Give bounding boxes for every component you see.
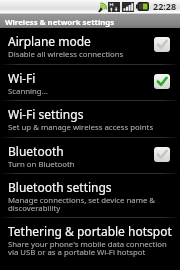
- staticText: Manage connections, set device name &: [8, 195, 156, 206]
- staticText: Wi-Fi: [8, 70, 36, 86]
- staticText: Scanning…: [8, 86, 48, 97]
- button[interactable]: Airplane mode: [0, 28, 180, 64]
- staticText: Tethering & portable hotspot: [8, 223, 172, 239]
- staticText: Turn on Bluetooth: [8, 159, 75, 170]
- button[interactable]: Disabled: [153, 36, 170, 52]
- button[interactable]: Enabled: [153, 73, 170, 89]
- staticText: Disable all wireless connections: [8, 49, 124, 60]
- staticText: Bluetooth settings: [8, 179, 112, 195]
- staticText: Airplane mode: [8, 33, 91, 49]
- button[interactable]: Wi-Fi settings: [0, 101, 180, 137]
- staticText: via USB or as a portable Wi-Fi hotspot: [8, 247, 146, 258]
- staticText: discoverability: [8, 203, 61, 214]
- button[interactable]: Wi-Fi: [0, 65, 180, 100]
- button[interactable]: Disabled: [153, 146, 170, 162]
- staticText: Wireless & network settings: [5, 17, 115, 28]
- staticText: 22:28: [153, 0, 177, 12]
- staticText: Set up & manage wireless access points: [8, 122, 154, 133]
- button[interactable]: Bluetooth settings: [0, 174, 180, 217]
- staticText: Bluetooth: [8, 143, 64, 159]
- staticText: Wi-Fi settings: [8, 106, 84, 122]
- button[interactable]: Tethering & portable hotspot: [0, 218, 180, 270]
- button[interactable]: Bluetooth: [0, 138, 180, 173]
- staticText: Share your phone's mobile data connectio…: [8, 239, 167, 250]
